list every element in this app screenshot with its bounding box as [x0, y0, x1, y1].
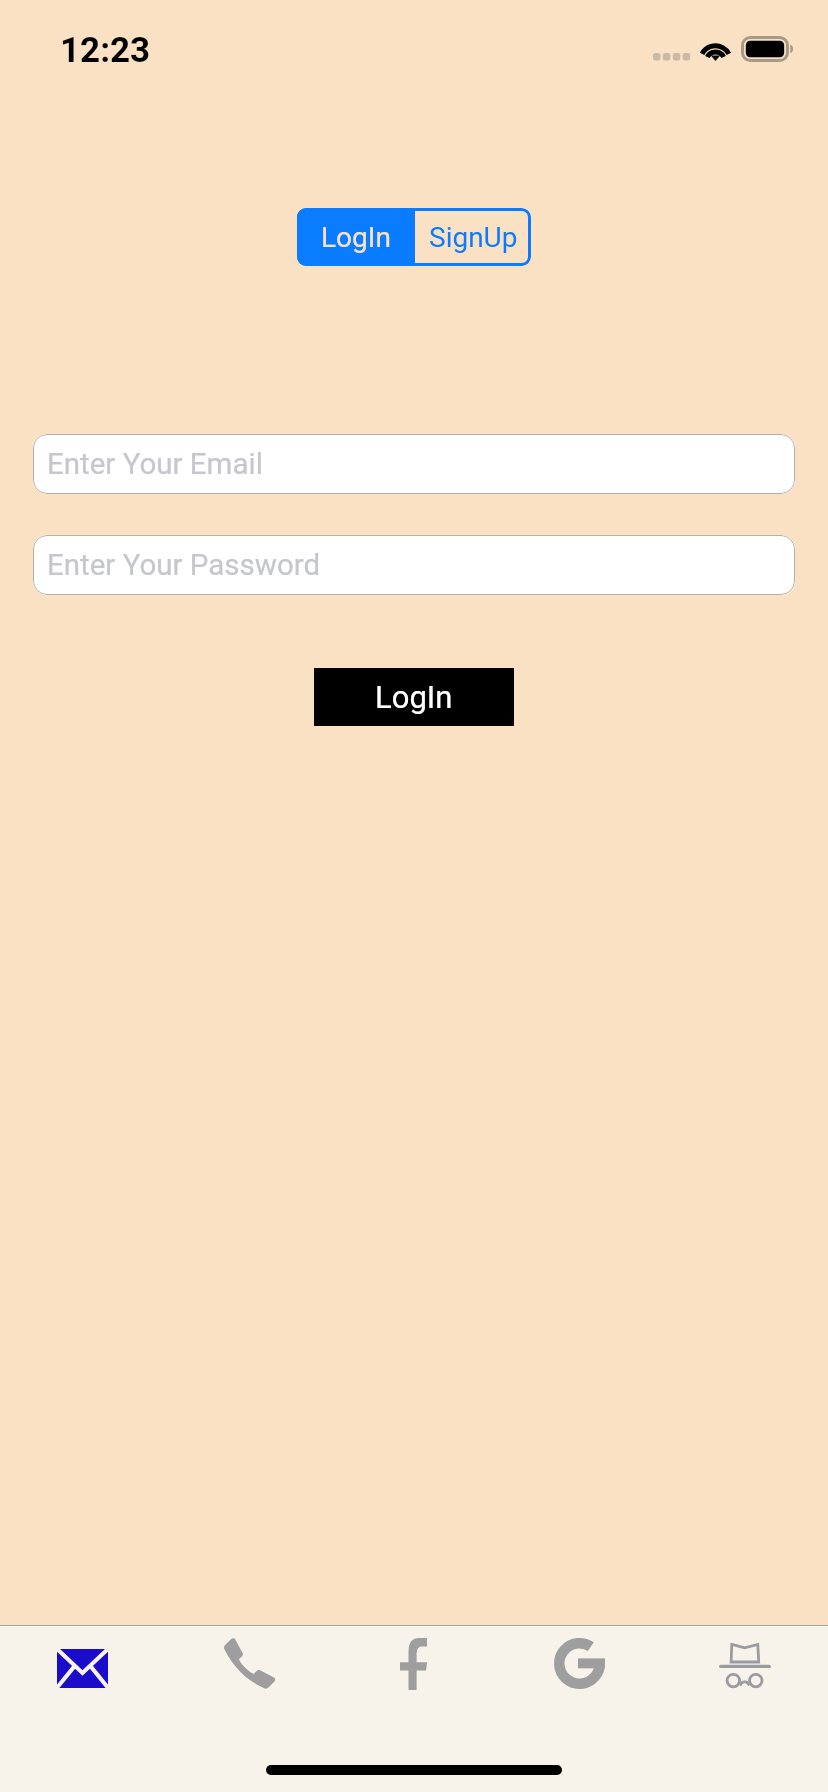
- button[interactable]: LogIn: [314, 668, 514, 726]
- button[interactable]: LogIn: [297, 208, 415, 266]
- button[interactable]: Enter Your Password: [33, 535, 795, 595]
- button[interactable]: Facebook: [330, 1627, 496, 1712]
- button[interactable]: Google: [496, 1627, 662, 1712]
- staticText: LogIn: [375, 679, 453, 715]
- staticText: Enter Your Email: [47, 447, 263, 482]
- staticText: 12:23: [60, 30, 151, 71]
- button[interactable]: Enter Your Email: [33, 434, 795, 494]
- button[interactable]: Phone: [165, 1627, 330, 1712]
- button[interactable]: Mail: [0, 1627, 165, 1712]
- button[interactable]: SignUp: [415, 208, 531, 266]
- staticText: Enter Your Password: [47, 548, 321, 583]
- button[interactable]: Incognito: [662, 1627, 828, 1712]
- staticText: SignUp: [429, 221, 518, 254]
- staticText: LogIn: [321, 221, 391, 254]
